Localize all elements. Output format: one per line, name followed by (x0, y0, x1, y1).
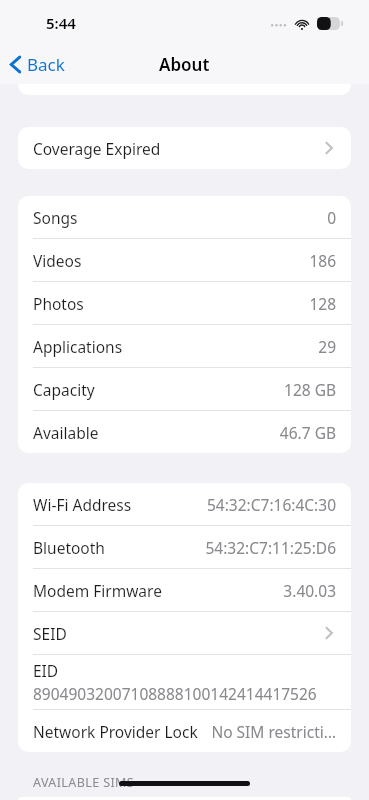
staticText: 0 (327, 207, 336, 228)
button[interactable]: Available (18, 411, 351, 453)
staticText: 54:32:C7:16:4C:30 (206, 494, 336, 515)
staticText: Back (27, 53, 65, 76)
staticText: 54:32:C7:11:25:D6 (205, 537, 336, 558)
button[interactable]: Videos (18, 239, 351, 282)
staticText: 29 (318, 336, 336, 357)
button[interactable]: Bluetooth (18, 526, 351, 569)
staticText: Videos (33, 250, 82, 271)
staticText: 3.40.03 (283, 580, 336, 601)
staticText: Photos (33, 293, 84, 314)
staticText: 5:44 (46, 13, 76, 33)
staticText: Coverage Expired (33, 138, 161, 159)
staticText: 186 (309, 250, 336, 271)
button[interactable]: Photos (18, 282, 351, 325)
staticText: No SIM restricti… (211, 721, 336, 742)
staticText: 46.7 GB (279, 422, 336, 443)
staticText: Bluetooth (33, 537, 105, 558)
button[interactable]: Wi-Fi Address (18, 483, 351, 526)
staticText: AVAILABLE SIMS (33, 774, 135, 791)
staticText: Capacity (33, 379, 95, 400)
button[interactable]: Back (0, 49, 75, 80)
button[interactable]: EID (18, 655, 351, 710)
staticText: Available (33, 422, 99, 443)
button[interactable]: Modem Firmware (18, 569, 351, 612)
staticText: Applications (33, 336, 123, 357)
button[interactable]: Coverage Expired (18, 127, 351, 169)
button[interactable]: Network Provider Lock (18, 710, 351, 752)
button[interactable]: SEID (18, 612, 351, 655)
staticText: SEID (33, 623, 67, 644)
staticText: 128 GB (284, 379, 336, 400)
staticText: About (159, 53, 210, 76)
staticText: Modem Firmware (33, 580, 162, 601)
other: Open (322, 623, 336, 643)
staticText: Network Provider Lock (33, 721, 198, 742)
staticText: Wi-Fi Address (33, 494, 132, 515)
button[interactable]: Capacity (18, 368, 351, 411)
button[interactable]: Songs (18, 196, 351, 239)
staticText: EID (33, 660, 59, 681)
staticText: 128 (309, 293, 336, 314)
staticText: Songs (33, 207, 78, 228)
other: Open (322, 138, 336, 158)
staticText: 89049032007108888100142414417526 (33, 683, 317, 704)
button[interactable]: Applications (18, 325, 351, 368)
